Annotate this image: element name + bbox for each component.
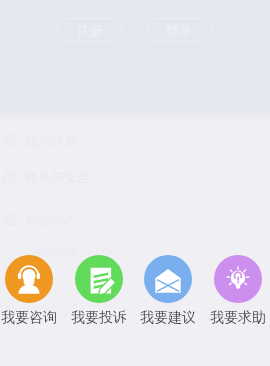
staticText: 登录 xyxy=(166,22,192,38)
staticText: 我要咨询 xyxy=(1,309,57,327)
staticText: 注册 xyxy=(77,22,103,38)
button[interactable]: 我要建议 xyxy=(133,255,203,327)
button[interactable]: 我要投诉 xyxy=(64,255,134,327)
staticText: 客服热线 12345 xyxy=(33,243,112,258)
button[interactable]: 我要咨询 xyxy=(0,255,64,327)
staticText: 我要建议 xyxy=(140,309,196,327)
staticText: 我要求助 xyxy=(210,309,266,327)
button[interactable]: 我要求助 xyxy=(203,255,270,327)
staticText: 我要投诉 xyxy=(71,309,127,327)
